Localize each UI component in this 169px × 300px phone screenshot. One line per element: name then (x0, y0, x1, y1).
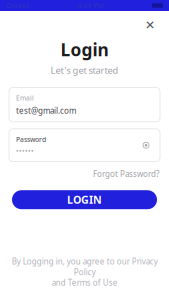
button[interactable]: Close (141, 16, 159, 34)
staticText: •••••• (16, 147, 34, 156)
button[interactable]: Forgot Password? (93, 167, 159, 181)
staticText: Forgot Password? (93, 169, 159, 179)
staticText: Login (60, 38, 108, 61)
staticText: By Logging in, you agree to our Privacy … (11, 256, 157, 288)
button[interactable]: LOGIN (12, 190, 157, 209)
button[interactable]: Show password (139, 138, 153, 152)
staticText: LOGIN (67, 193, 102, 207)
staticText: Let's get started (50, 64, 118, 76)
staticText: Cricket (6, 1, 29, 10)
staticText: test@gmail.com (16, 105, 76, 116)
staticText: ✕ (145, 18, 155, 32)
staticText: 3:44 PM (77, 1, 103, 10)
staticText: Password (16, 135, 46, 144)
staticText: Email (16, 93, 34, 102)
